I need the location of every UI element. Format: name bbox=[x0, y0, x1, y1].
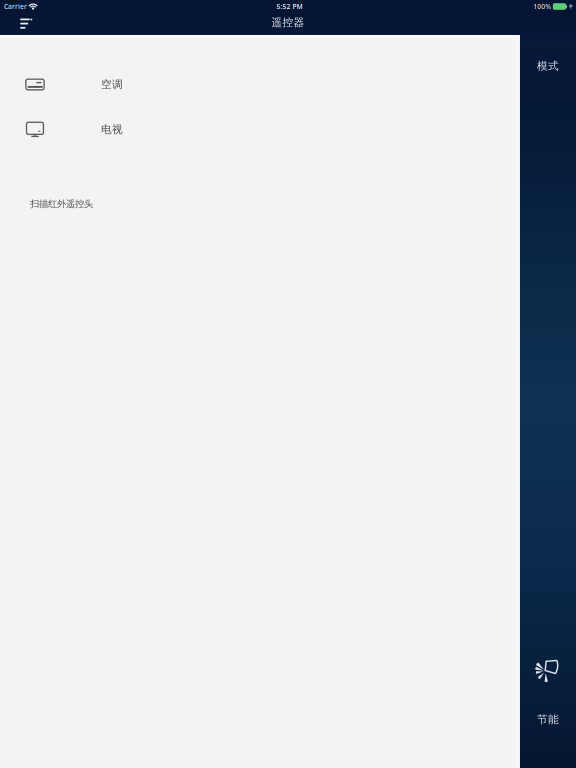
staticText: 模式 bbox=[537, 59, 559, 72]
staticText: 空调 bbox=[101, 78, 123, 91]
staticText: 100% bbox=[533, 2, 551, 11]
button[interactable]: 空调 bbox=[0, 62, 520, 107]
button[interactable]: 扫描红外遥控头 bbox=[0, 191, 520, 217]
staticText: 扫描红外遥控头 bbox=[30, 198, 93, 210]
button[interactable]: 节能 bbox=[520, 658, 576, 726]
staticText: 节能 bbox=[537, 713, 559, 726]
staticText: Carrier bbox=[4, 2, 27, 11]
staticText: 电视 bbox=[101, 123, 123, 136]
button[interactable]: 模式 bbox=[520, 35, 576, 97]
staticText: 遥控器 bbox=[271, 16, 304, 29]
staticText: + bbox=[568, 1, 573, 12]
button[interactable]: 电视 bbox=[0, 107, 520, 152]
staticText: 5:52 PM bbox=[276, 2, 302, 11]
button[interactable]: Menu bbox=[0, 13, 39, 35]
